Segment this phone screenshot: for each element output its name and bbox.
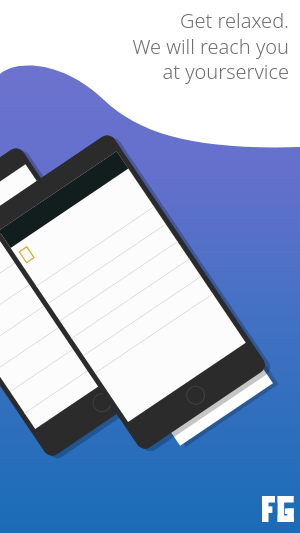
staticText: Get relaxed. We will reach you at yourse… <box>20 7 289 84</box>
button[interactable]: Fix-Go-Now logo <box>257 492 297 532</box>
